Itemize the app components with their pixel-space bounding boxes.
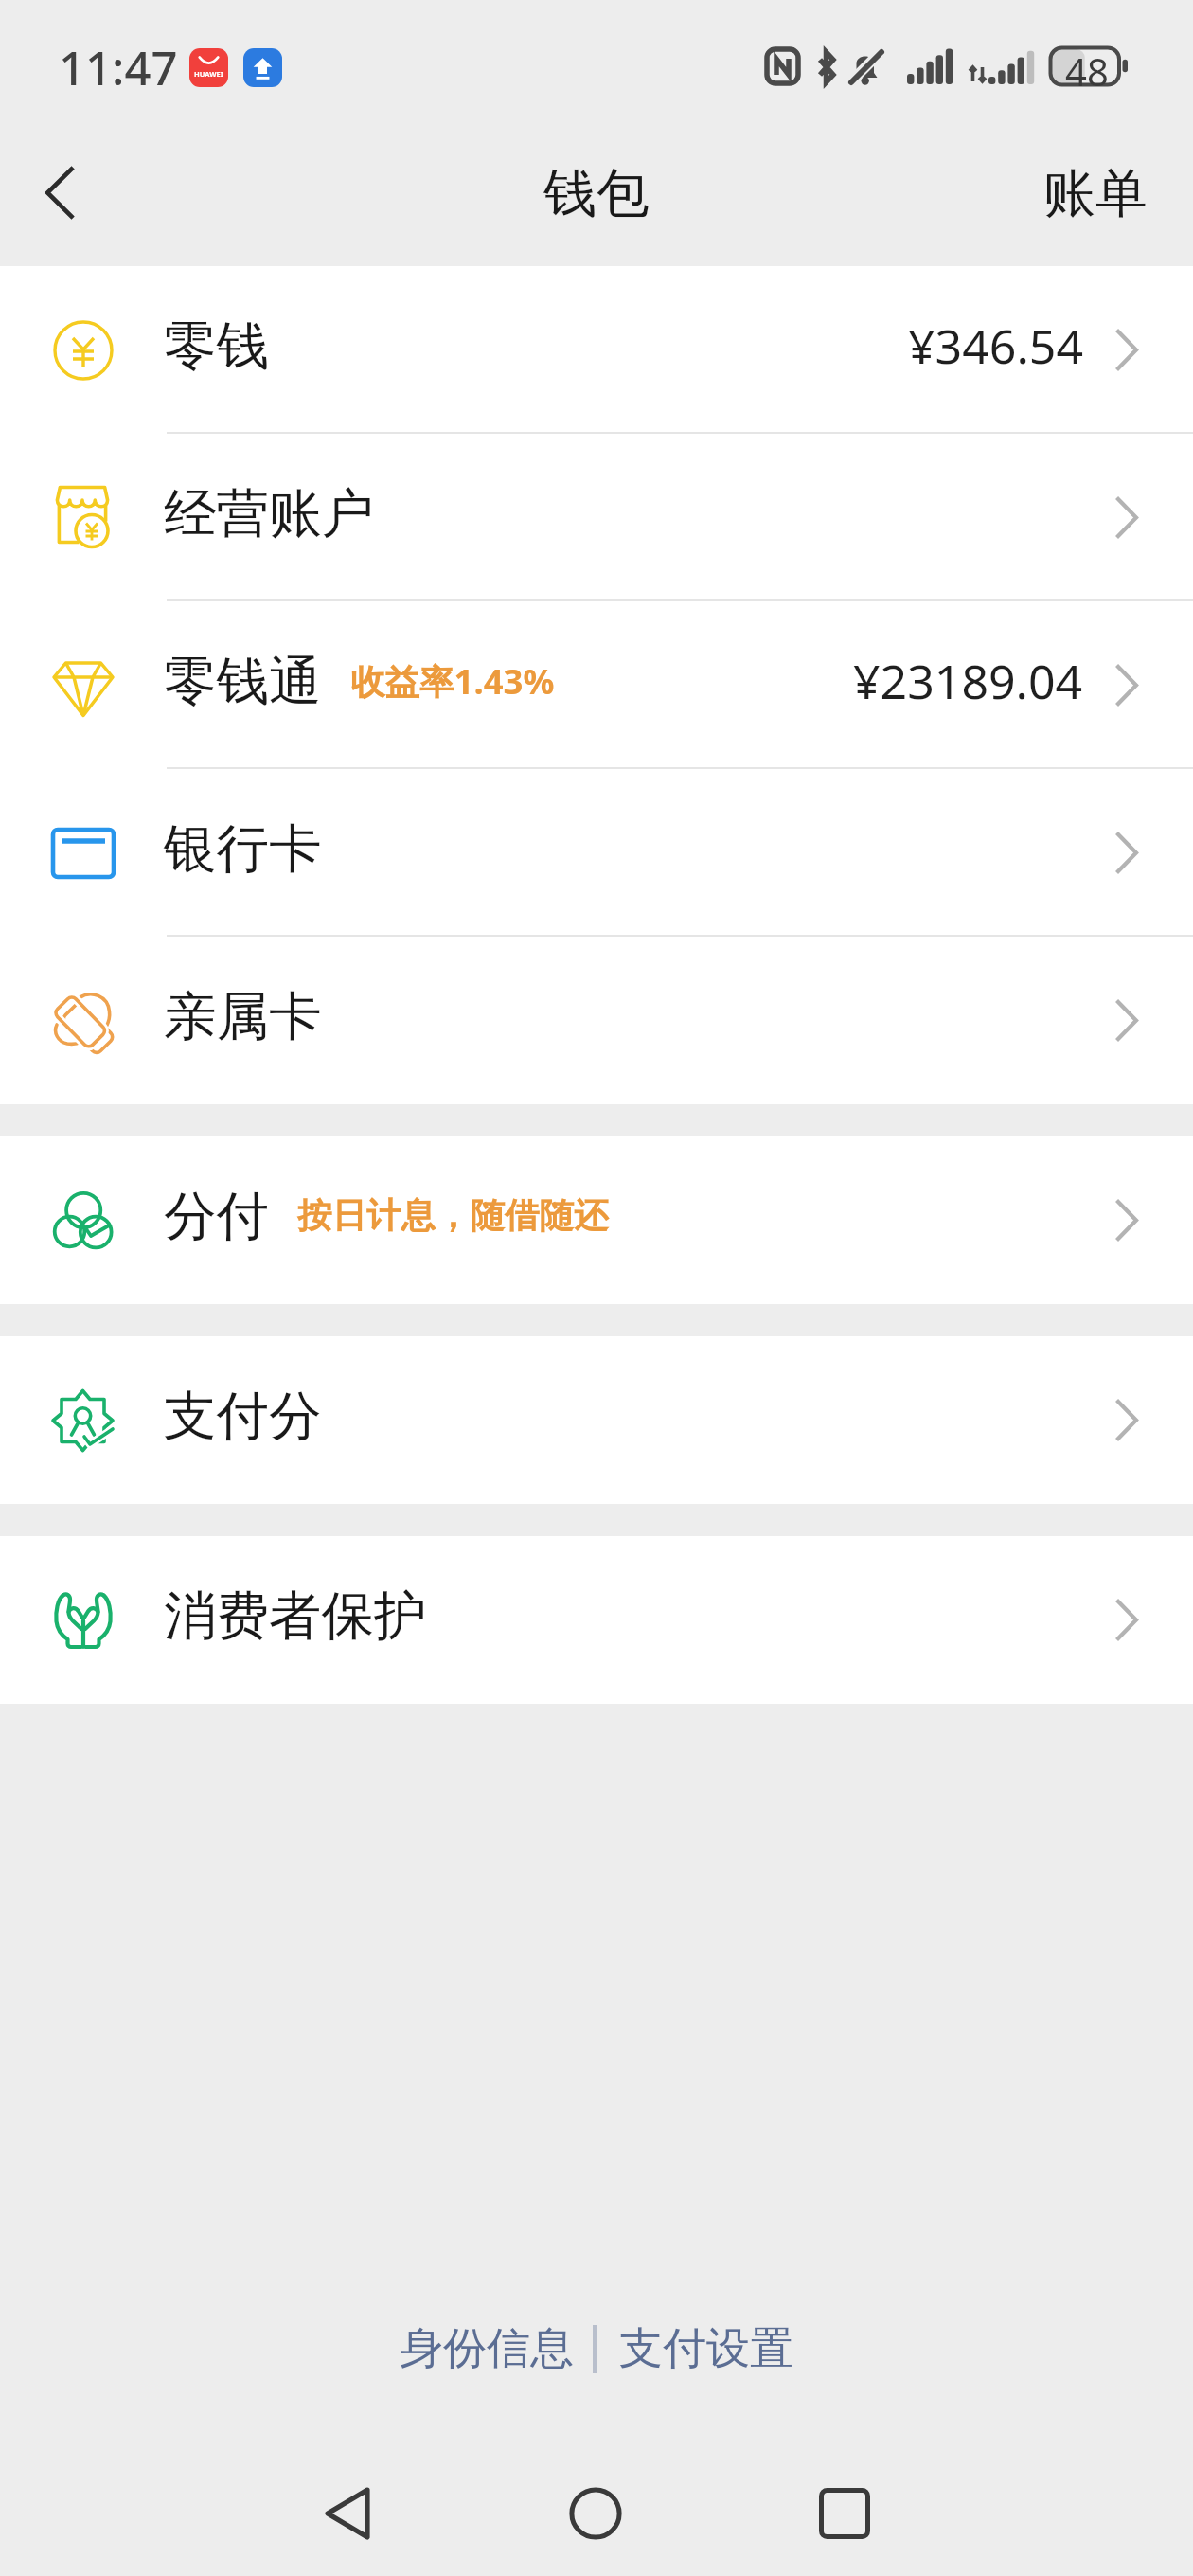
button[interactable]: Home [539, 2457, 652, 2570]
staticText: 11:47 [59, 36, 178, 99]
staticText: 经营账户 [164, 481, 374, 547]
staticText: 支付设置 [619, 2321, 793, 2376]
button[interactable]: 支付设置 [596, 2308, 803, 2389]
staticText: 零钱 [164, 313, 269, 380]
button[interactable]: 身份信息 [390, 2308, 593, 2389]
staticText: 分付 [164, 1184, 269, 1250]
staticText: 账单 [1043, 161, 1148, 226]
staticText: ¥23189.04 [853, 649, 1083, 713]
staticText: HUAWEI [194, 69, 223, 79]
button[interactable]: Recents [788, 2457, 901, 2570]
button[interactable]: 支付分 [0, 1336, 1193, 1504]
button[interactable]: 亲属卡 [0, 937, 1193, 1104]
button[interactable]: 经营账户 [0, 434, 1193, 601]
button[interactable]: 分付 [0, 1136, 1193, 1304]
staticText: 钱包 [543, 160, 650, 227]
button[interactable]: Back [291, 2457, 404, 2570]
staticText: 48 [1065, 45, 1109, 97]
staticText: 银行卡 [164, 816, 322, 883]
staticText: ¥346.54 [908, 313, 1083, 378]
button[interactable]: 账单 [1023, 147, 1168, 242]
staticText: 按日计息，随借随还 [297, 1194, 609, 1238]
staticText: 收益率1.43% [350, 657, 555, 705]
staticText: 身份信息 [400, 2321, 574, 2376]
button[interactable]: Back [5, 143, 109, 247]
staticText: 零钱通 [164, 649, 322, 715]
staticText: 消费者保护 [164, 1583, 427, 1650]
button[interactable]: 银行卡 [0, 769, 1193, 937]
button[interactable]: 零钱通 [0, 601, 1193, 769]
staticText: 支付分 [164, 1384, 322, 1450]
staticText: 亲属卡 [164, 984, 322, 1050]
button[interactable]: 零钱 [0, 266, 1193, 434]
button[interactable]: 消费者保护 [0, 1536, 1193, 1704]
